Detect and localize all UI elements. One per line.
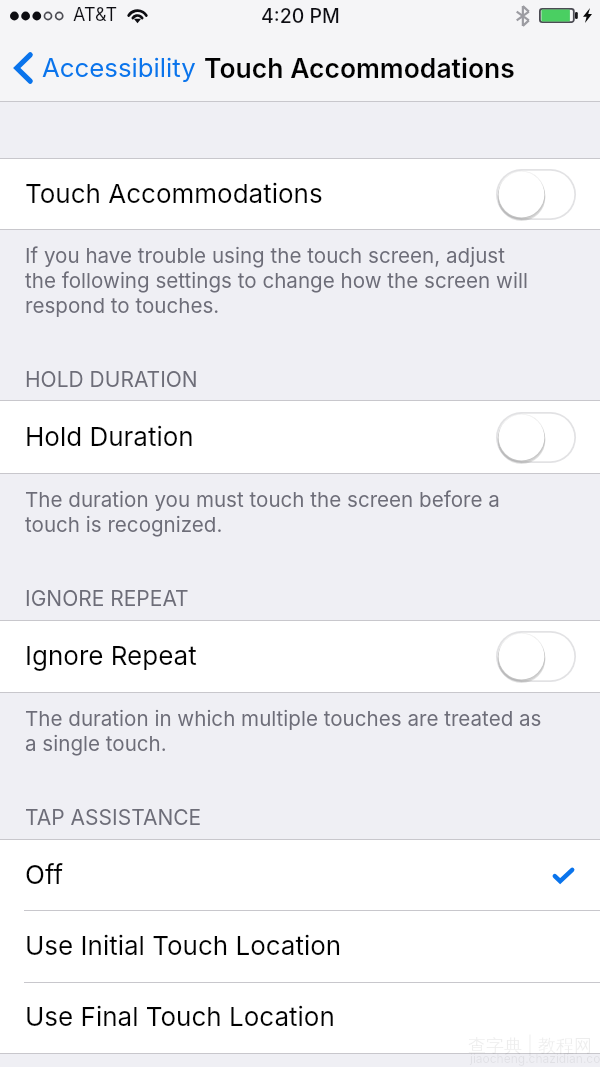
staticText: jiaocheng.chazidian.com <box>470 1051 600 1066</box>
other: Selected <box>553 868 574 883</box>
staticText: AT&T <box>73 4 118 26</box>
button[interactable]: Ignore Repeat <box>0 621 600 692</box>
button[interactable]: Use Initial Touch Location <box>0 910 600 982</box>
staticText: The duration in which multiple touches a… <box>25 706 542 731</box>
button[interactable]: Off <box>0 840 600 910</box>
staticText: touch is recognized. <box>25 512 223 537</box>
staticText: 4:20 PM <box>261 4 340 28</box>
button[interactable]: Touch Accommodations <box>0 159 600 229</box>
staticText: TAP ASSISTANCE <box>25 805 202 830</box>
staticText: Touch Accommodations <box>204 52 515 84</box>
staticText: Accessibility <box>42 52 196 83</box>
button[interactable]: Use Final Touch Location <box>0 982 600 1053</box>
staticText: HOLD DURATION <box>25 367 198 392</box>
staticText: Use Initial Touch Location <box>25 930 342 961</box>
button[interactable]: Hold Duration <box>0 401 600 473</box>
staticText: respond to touches. <box>25 293 220 318</box>
staticText: the following settings to change how the… <box>25 268 528 293</box>
staticText: Ignore Repeat <box>25 640 197 671</box>
button[interactable]: Hold Duration switch, off <box>496 412 576 463</box>
button[interactable]: Back to Accessibility <box>0 48 202 88</box>
staticText: a single touch. <box>25 731 167 756</box>
staticText: 查字典 | 教程网 <box>468 1035 593 1058</box>
staticText: Off <box>25 859 64 890</box>
button[interactable]: Ignore Repeat switch, off <box>496 631 576 682</box>
staticText: IGNORE REPEAT <box>25 586 189 611</box>
staticText: Use Final Touch Location <box>25 1001 335 1032</box>
staticText: If you have trouble using the touch scre… <box>25 243 505 268</box>
button[interactable]: Touch Accommodations switch, off <box>496 169 576 220</box>
staticText: The duration you must touch the screen b… <box>25 487 500 512</box>
staticText: Hold Duration <box>25 421 194 452</box>
staticText: Touch Accommodations <box>25 178 323 209</box>
